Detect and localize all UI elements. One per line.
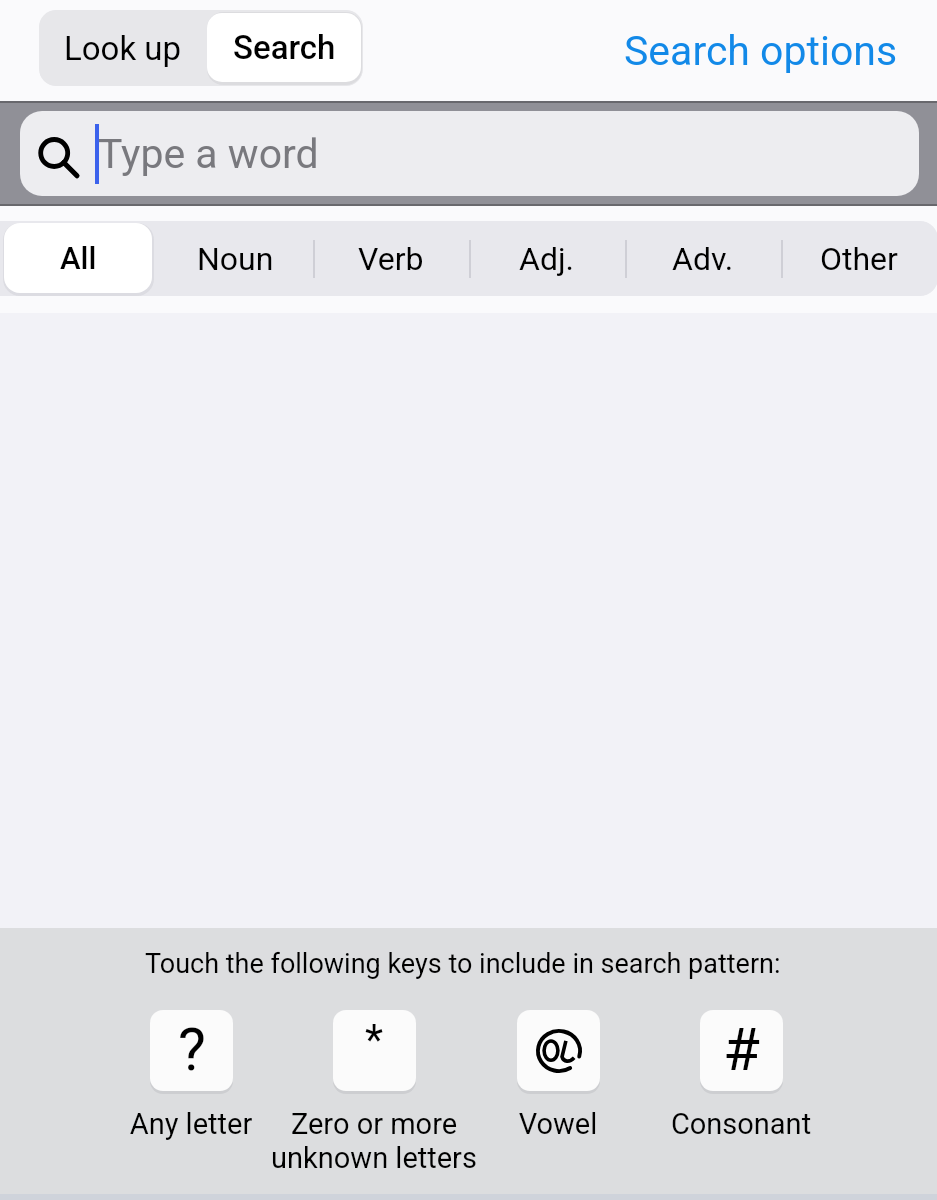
staticText: Search (233, 28, 336, 67)
button[interactable]: Vowel (438, 1010, 678, 1141)
staticText: Adv. (672, 240, 734, 278)
button[interactable]: Noun (157, 221, 313, 296)
staticText: Any letter (71, 1107, 311, 1141)
button[interactable]: Verb (313, 221, 469, 296)
button[interactable]: # (621, 1010, 861, 1141)
staticText: Adj. (519, 240, 575, 278)
staticText: All (60, 240, 97, 276)
button[interactable]: * (254, 1010, 494, 1175)
button[interactable]: All (4, 223, 152, 293)
staticText: Vowel (438, 1107, 678, 1141)
staticText: Look up (64, 29, 182, 68)
button[interactable]: Search options (624, 27, 898, 75)
staticText: * (365, 1015, 384, 1064)
button[interactable]: Search (20, 111, 919, 196)
staticText: Search options (624, 27, 898, 75)
staticText: Touch the following keys to include in s… (145, 948, 781, 980)
other: Search (20, 111, 919, 196)
staticText: Verb (358, 240, 424, 278)
button[interactable]: ? (71, 1010, 311, 1141)
staticText: Zero or more unknown letters (254, 1107, 494, 1175)
staticText: Consonant (621, 1107, 861, 1141)
button[interactable]: Look up (39, 10, 207, 86)
button[interactable]: Search (207, 13, 361, 82)
button[interactable]: Adj. (469, 221, 625, 296)
staticText: Type a word (98, 130, 319, 178)
staticText: Other (820, 240, 898, 278)
staticText: Noun (197, 240, 274, 278)
button[interactable]: Other (781, 221, 937, 296)
staticText: # (723, 1014, 760, 1084)
button[interactable]: Adv. (625, 221, 781, 296)
staticText: ? (178, 1015, 206, 1084)
